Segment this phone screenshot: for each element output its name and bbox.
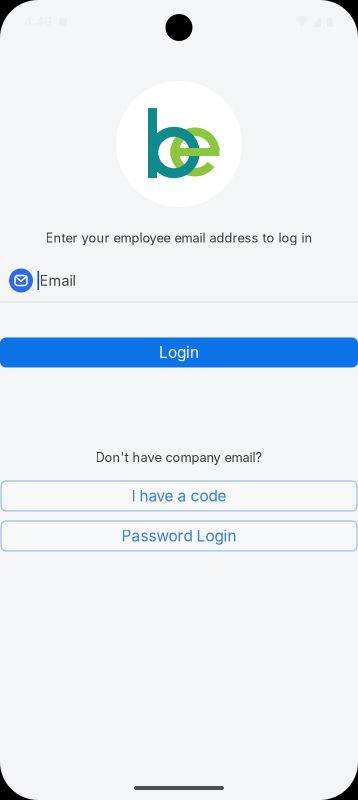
- staticText: Password Login: [121, 527, 236, 545]
- staticText: Don't have company email?: [95, 449, 262, 465]
- button[interactable]: Password Login: [1, 521, 357, 551]
- staticText: I have a code: [131, 487, 226, 505]
- button[interactable]: I have a code: [1, 481, 357, 511]
- staticText: Enter your employee email address to log…: [45, 230, 312, 245]
- staticText: Login: [159, 343, 199, 362]
- staticText: Email: [40, 272, 76, 289]
- button[interactable]: Login: [0, 337, 358, 367]
